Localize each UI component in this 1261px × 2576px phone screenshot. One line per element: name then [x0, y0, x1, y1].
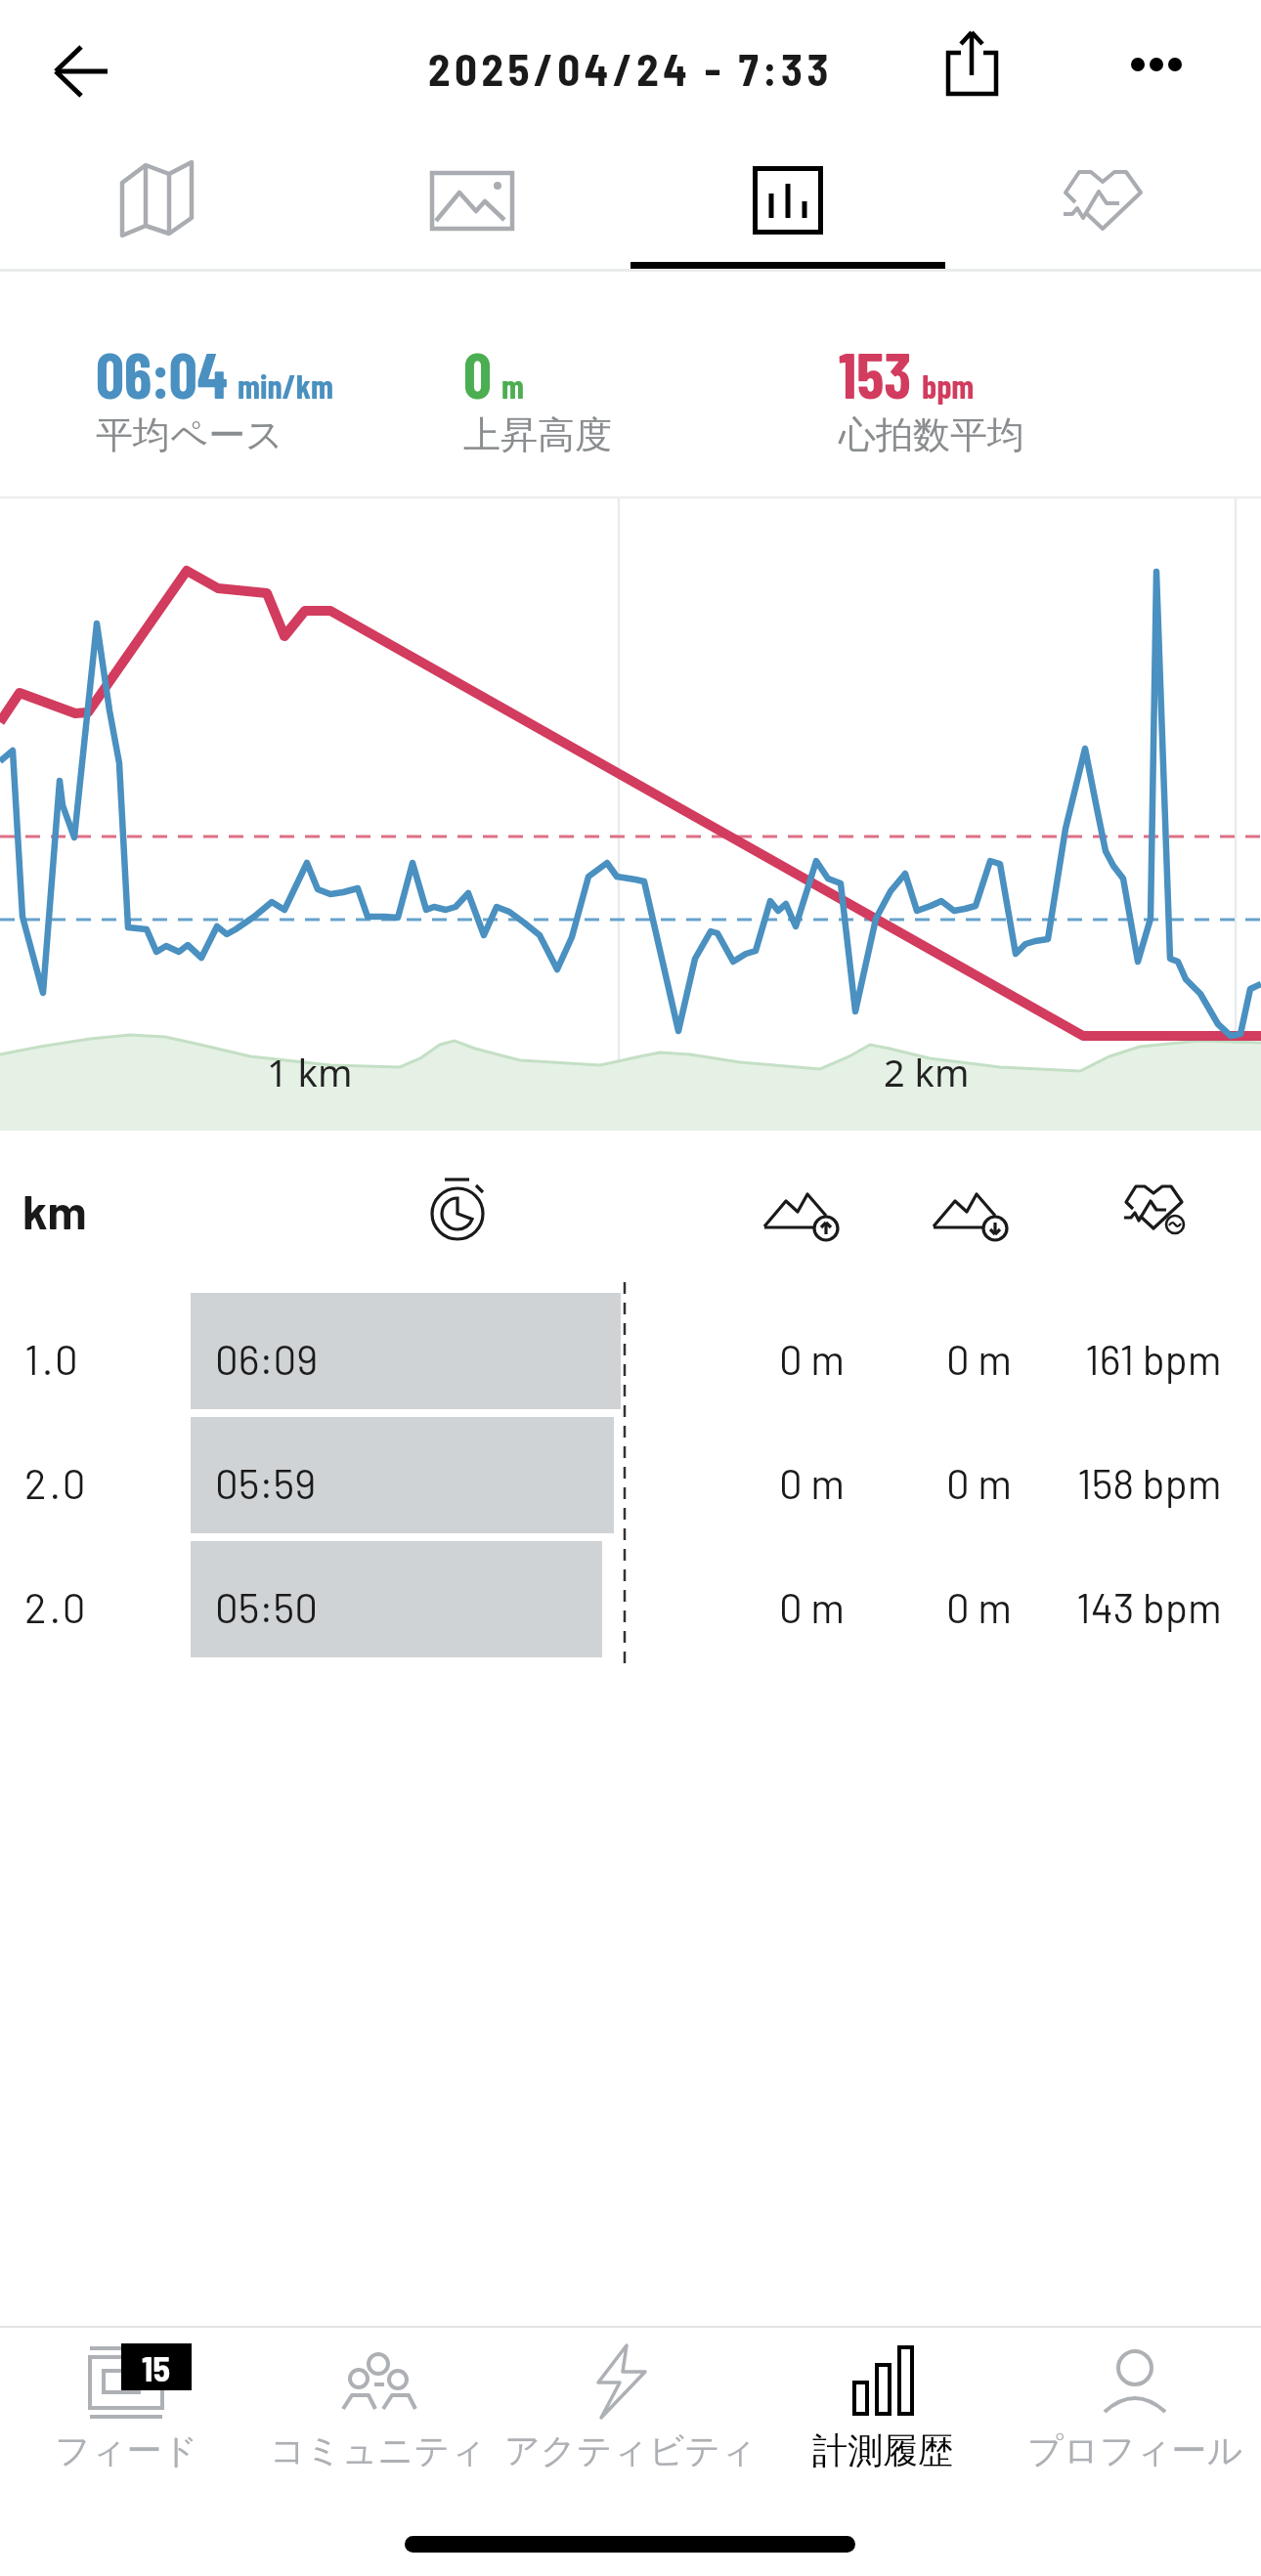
staticText: 1 km: [267, 1047, 353, 1097]
staticText: 143 bpm: [1076, 1582, 1222, 1631]
staticText: コミュニティ: [270, 2428, 487, 2472]
staticText: フィード: [55, 2428, 198, 2472]
button[interactable]: [630, 137, 945, 264]
staticText: 0 m: [946, 1582, 1012, 1631]
staticText: 05:50: [215, 1582, 318, 1631]
button[interactable]: 2.0: [0, 1417, 1261, 1533]
button[interactable]: [315, 137, 630, 264]
staticText: プロフィール: [1027, 2428, 1243, 2472]
staticText: 06:04: [96, 336, 228, 411]
staticText: km: [22, 1182, 87, 1239]
button[interactable]: 2.0: [0, 1541, 1261, 1657]
button[interactable]: 計測履歴: [757, 2328, 1009, 2502]
staticText: 1.0: [24, 1334, 81, 1383]
staticText: 0: [463, 336, 492, 411]
staticText: 161 bpm: [1085, 1334, 1222, 1383]
staticText: 2 km: [884, 1047, 970, 1097]
button[interactable]: [1109, 24, 1202, 107]
staticText: 平均ペース: [96, 411, 283, 458]
button[interactable]: [29, 24, 127, 122]
button[interactable]: コミュニティ: [252, 2328, 504, 2502]
staticText: 2.0: [24, 1582, 89, 1631]
staticText: 心拍数平均: [839, 411, 1024, 458]
button[interactable]: 1.0: [0, 1293, 1261, 1409]
staticText: m: [501, 365, 524, 406]
staticText: 15: [142, 2346, 171, 2388]
staticText: 0 m: [946, 1334, 1012, 1383]
button[interactable]: [945, 137, 1261, 264]
button[interactable]: フィード: [0, 2328, 252, 2502]
staticText: 0 m: [779, 1582, 845, 1631]
staticText: 05:59: [215, 1458, 317, 1507]
staticText: 0 m: [779, 1334, 845, 1383]
button[interactable]: [0, 137, 315, 264]
staticText: 計測履歴: [812, 2428, 953, 2472]
staticText: bpm: [922, 365, 975, 406]
staticText: 153: [839, 336, 912, 411]
staticText: 06:09: [215, 1334, 319, 1383]
button[interactable]: プロフィール: [1009, 2328, 1261, 2502]
staticText: 158 bpm: [1077, 1458, 1222, 1507]
button[interactable]: アクティビティ: [504, 2328, 757, 2502]
staticText: 0 m: [779, 1458, 845, 1507]
staticText: 0 m: [946, 1458, 1012, 1507]
staticText: 2.0: [24, 1458, 89, 1507]
staticText: 上昇高度: [463, 411, 612, 458]
staticText: アクティビティ: [504, 2428, 757, 2472]
button[interactable]: [924, 20, 1022, 112]
staticText: min/km: [238, 365, 333, 406]
staticText: 2025/04/24 - 7:33: [428, 42, 833, 95]
